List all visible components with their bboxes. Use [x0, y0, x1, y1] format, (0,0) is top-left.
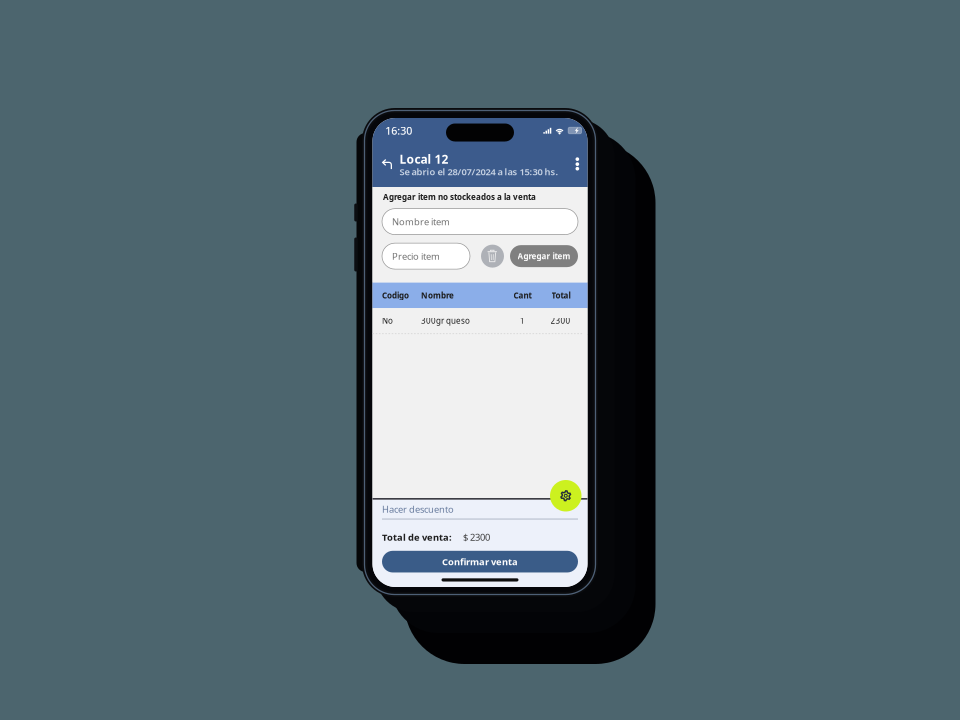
staticText: Nombre — [421, 290, 454, 301]
staticText: $ 2300 — [463, 531, 490, 543]
staticText: Agregar item no stockeados a la venta — [383, 191, 536, 202]
staticText: Codigo — [382, 290, 409, 301]
button[interactable]: Back — [369, 153, 399, 179]
staticText: Total de venta: — [382, 531, 452, 543]
staticText: Se abrio el 28/07/2024 a las 15:30 hs. — [399, 165, 558, 178]
button[interactable]: Delete — [481, 245, 504, 268]
button[interactable]: More options — [566, 150, 591, 182]
button[interactable]: Agregar item — [510, 245, 578, 267]
button[interactable]: Settings — [550, 480, 581, 511]
staticText: 300gr queso — [421, 315, 470, 326]
staticText: 2300 — [550, 315, 570, 326]
button[interactable]: Confirmar venta — [382, 551, 578, 572]
staticText: Total — [551, 290, 570, 301]
staticText: 16:30 — [385, 123, 412, 138]
staticText: Precio item — [392, 250, 440, 262]
staticText: Local 12 — [399, 151, 448, 167]
staticText: Agregar item — [517, 251, 570, 261]
staticText: Nombre item — [392, 215, 450, 228]
staticText: Hacer descuento — [382, 503, 454, 515]
staticText: Cant — [513, 290, 531, 301]
staticText: No — [382, 315, 393, 326]
staticText: 1 — [520, 315, 525, 326]
staticText: Confirmar venta — [442, 555, 518, 568]
